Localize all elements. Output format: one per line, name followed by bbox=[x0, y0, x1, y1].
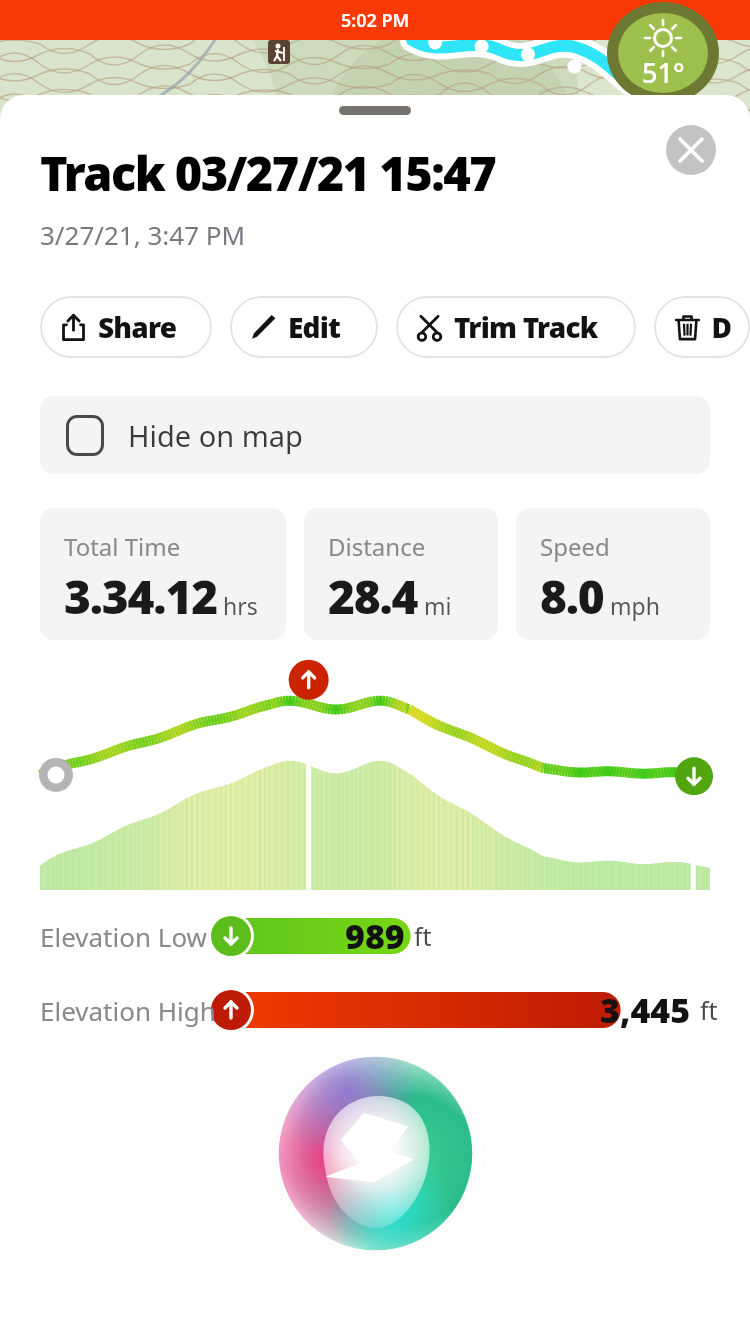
staticText: Elevation High bbox=[40, 993, 216, 1028]
button[interactable]: Elevation Low bbox=[0, 910, 750, 962]
button[interactable]: Elevation High bbox=[0, 984, 750, 1036]
staticText: 3/27/21, 3:47 PM bbox=[40, 217, 246, 252]
button[interactable]: Distance bbox=[304, 508, 498, 640]
staticText: Hide on map bbox=[128, 416, 303, 455]
staticText: 5:02 PM bbox=[341, 8, 410, 33]
button[interactable]: Delete bbox=[654, 296, 750, 358]
button[interactable]: Speed bbox=[516, 508, 710, 640]
staticText: Distance bbox=[328, 530, 426, 563]
staticText: Track 03/27/21 15:47 bbox=[40, 141, 496, 205]
staticText: 989 bbox=[345, 913, 405, 959]
button[interactable]: Total Time bbox=[40, 508, 286, 640]
staticText: Trim Track bbox=[454, 308, 598, 346]
staticText: Total Time bbox=[64, 530, 181, 563]
staticText: 8.0 bbox=[540, 565, 604, 628]
staticText: Edit bbox=[288, 308, 341, 346]
staticText: 3,445 bbox=[600, 987, 691, 1033]
staticText: Elevation Low bbox=[40, 919, 208, 954]
button[interactable]: Close bbox=[666, 125, 716, 175]
staticText: Delete bbox=[712, 308, 730, 346]
staticText: 51° bbox=[642, 54, 685, 91]
staticText: 3.34.12 bbox=[64, 565, 217, 628]
staticText: 28.4 bbox=[328, 565, 418, 628]
staticText: Share bbox=[98, 308, 177, 346]
staticText: Speed bbox=[540, 530, 610, 563]
staticText: ft bbox=[700, 993, 718, 1027]
button[interactable]: Trim Track bbox=[396, 296, 636, 358]
button[interactable]: Edit bbox=[230, 296, 378, 358]
staticText: hrs bbox=[223, 590, 258, 621]
staticText: ft bbox=[414, 919, 432, 953]
staticText: mph bbox=[610, 590, 660, 621]
button[interactable]: Hide on map bbox=[40, 396, 710, 474]
staticText: mi bbox=[424, 590, 452, 621]
button[interactable]: Share bbox=[40, 296, 212, 358]
